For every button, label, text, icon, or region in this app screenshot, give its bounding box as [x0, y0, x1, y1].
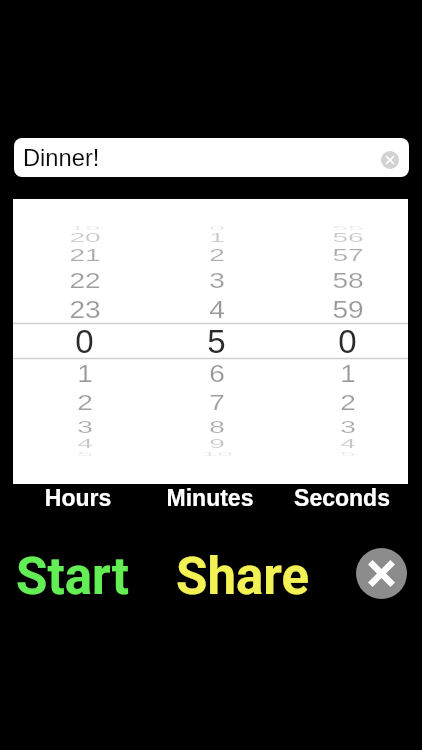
staticText: 3 [340, 418, 356, 437]
staticText: 8 [209, 418, 225, 437]
button[interactable]: Minutes [140, 485, 280, 509]
staticText: 22 [69, 268, 101, 293]
staticText: 3 [77, 418, 93, 437]
staticText: 59 [332, 296, 364, 323]
staticText: 0 [75, 323, 94, 360]
staticText: 10 [201, 451, 233, 457]
staticText: 2 [77, 390, 93, 415]
button[interactable]: Seconds [272, 485, 412, 509]
staticText: 7 [209, 390, 225, 415]
staticText: 4 [77, 437, 93, 451]
staticText: 9 [209, 437, 225, 451]
staticText: Start [16, 547, 130, 607]
staticText: 4 [209, 296, 225, 323]
staticText: 4 [340, 437, 356, 451]
staticText: 0 [209, 225, 225, 231]
staticText: 3 [209, 268, 225, 293]
staticText: Hours [8, 485, 148, 509]
staticText: 2 [209, 246, 225, 265]
staticText: 23 [69, 296, 101, 323]
staticText: Seconds [272, 485, 412, 509]
staticText: 55 [332, 225, 364, 231]
button[interactable]: 55 [282, 199, 413, 484]
staticText: 5 [77, 451, 93, 457]
button[interactable]: 0 [151, 199, 282, 484]
staticText: 1 [209, 231, 225, 245]
staticText: 58 [332, 268, 364, 293]
button[interactable]: Dinner! [14, 138, 409, 177]
button[interactable]: Start [10, 547, 124, 607]
staticText: 57 [332, 246, 364, 265]
button[interactable]: Share [170, 547, 304, 607]
staticText: 0 [338, 323, 357, 360]
staticText: 5 [340, 451, 356, 457]
staticText: Share [176, 547, 310, 607]
staticText: 56 [332, 231, 364, 245]
staticText: 5 [207, 323, 226, 360]
staticText: 1 [77, 360, 93, 387]
staticText: 1 [340, 360, 356, 387]
staticText: 2 [340, 390, 356, 415]
staticText: 20 [69, 231, 101, 245]
button[interactable]: Clear text [381, 151, 399, 169]
staticText: Minutes [140, 485, 280, 509]
staticText: 6 [209, 360, 225, 387]
button[interactable]: Cancel [356, 548, 407, 599]
staticText: 21 [69, 246, 101, 265]
button[interactable]: Hours [8, 485, 148, 509]
staticText: 19 [69, 225, 101, 231]
button[interactable]: 19 [19, 199, 150, 484]
staticText: Dinner! [23, 145, 100, 171]
